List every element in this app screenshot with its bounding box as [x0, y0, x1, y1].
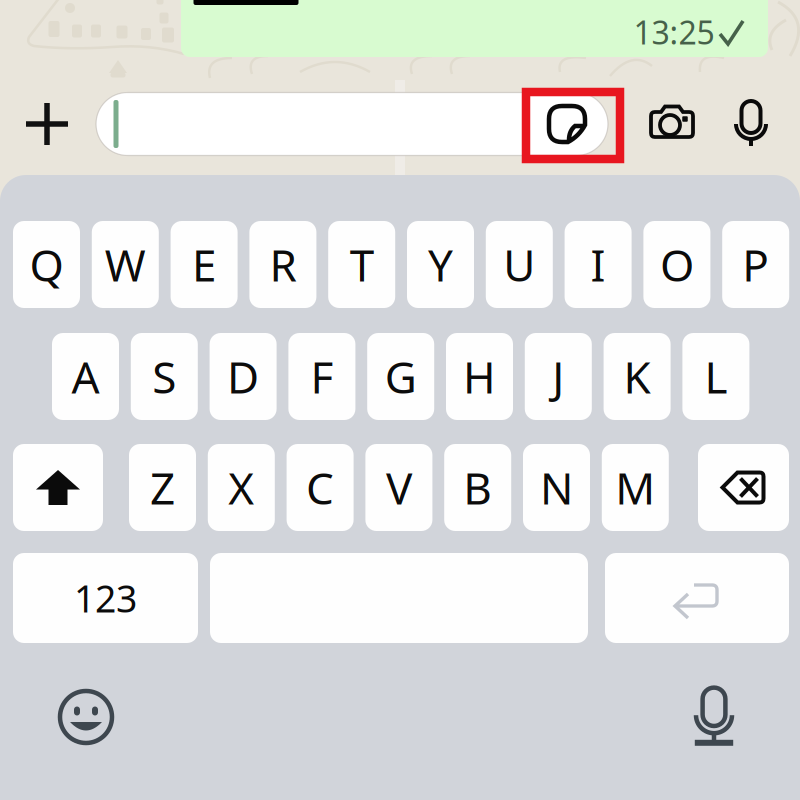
staticText: S [152, 347, 176, 406]
button[interactable]: L [682, 333, 749, 420]
button[interactable]: Delete [698, 444, 789, 531]
button[interactable]: H [446, 333, 513, 420]
button[interactable]: N [523, 444, 590, 531]
button[interactable]: G [367, 333, 434, 420]
button[interactable]: O [643, 221, 710, 308]
button[interactable]: A [52, 333, 119, 420]
button[interactable]: 123 [13, 553, 198, 643]
staticText: K [624, 347, 651, 406]
staticText: F [310, 347, 333, 406]
button[interactable]: Voice message [720, 89, 782, 157]
button[interactable]: Attach [10, 87, 84, 161]
staticText: W [105, 235, 146, 294]
button[interactable]: R [249, 221, 316, 308]
staticText: A [71, 347, 99, 406]
staticText: 123 [74, 573, 137, 623]
staticText: X [228, 458, 254, 517]
button[interactable]: W [92, 221, 159, 308]
button[interactable]: Emoji [48, 679, 124, 755]
staticText: Y [428, 235, 453, 294]
button[interactable]: V [365, 444, 432, 531]
button[interactable]: P [722, 221, 789, 308]
button[interactable]: B [444, 444, 511, 531]
button[interactable]: Camera [641, 91, 703, 153]
staticText: H [463, 347, 496, 406]
staticText: 13:25 [633, 11, 714, 53]
staticText: N [540, 458, 573, 517]
staticText: C [306, 458, 334, 517]
staticText: O [660, 235, 694, 294]
staticText: R [269, 235, 296, 294]
button[interactable]: T [328, 221, 395, 308]
button[interactable]: Q [13, 221, 80, 308]
staticText: T [350, 235, 374, 294]
button[interactable]: D [210, 333, 277, 420]
staticText: Q [29, 235, 63, 294]
button[interactable]: E [171, 221, 238, 308]
staticText: D [227, 347, 259, 406]
staticText: P [742, 235, 769, 294]
button[interactable]: Dictation [676, 678, 752, 754]
staticText: M [615, 458, 655, 517]
button[interactable]: K [604, 333, 671, 420]
button[interactable]: I [565, 221, 632, 308]
staticText: V [386, 458, 412, 517]
staticText: L [704, 347, 727, 406]
button[interactable]: M [602, 444, 669, 531]
staticText: Z [150, 458, 175, 517]
staticText: G [385, 347, 417, 406]
staticText: I [591, 235, 606, 294]
staticText: U [503, 235, 535, 294]
button[interactable]: Stickers [536, 93, 598, 155]
staticText: B [463, 458, 492, 517]
button[interactable]: F [288, 333, 355, 420]
button[interactable]: U [486, 221, 553, 308]
button[interactable]: Y [407, 221, 474, 308]
button[interactable]: Z [129, 444, 196, 531]
button[interactable]: J [525, 333, 592, 420]
staticText: J [552, 347, 564, 406]
button[interactable]: S [131, 333, 198, 420]
button[interactable]: return [605, 553, 789, 643]
button[interactable]: X [208, 444, 275, 531]
button[interactable]: C [287, 444, 354, 531]
button[interactable]: Shift [13, 444, 103, 531]
staticText: E [192, 235, 216, 294]
